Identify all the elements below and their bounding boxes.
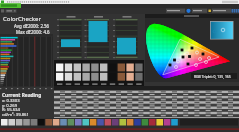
button[interactable]: Pattern source bbox=[212, 8, 231, 13]
staticText: Max dE2000: 4.6 bbox=[16, 29, 50, 35]
button[interactable]: Meter settings bbox=[193, 8, 208, 13]
staticText: Current Reading bbox=[2, 92, 42, 99]
staticText: RGB Triplet: 0, 135, 165 bbox=[194, 74, 231, 79]
staticText: x: 0.3303 bbox=[2, 98, 20, 104]
staticText: R: 55.634 bbox=[2, 107, 20, 113]
staticText: cd/m²: 39.861 bbox=[2, 112, 29, 118]
button[interactable]: Session selector bbox=[5, 9, 16, 13]
staticText: ColorChecker bbox=[3, 15, 41, 23]
staticText: Avg dE2000: 2.56 bbox=[14, 23, 50, 29]
staticText: y: 0.269 bbox=[2, 103, 18, 109]
button[interactable]: Workflow bbox=[166, 8, 186, 13]
